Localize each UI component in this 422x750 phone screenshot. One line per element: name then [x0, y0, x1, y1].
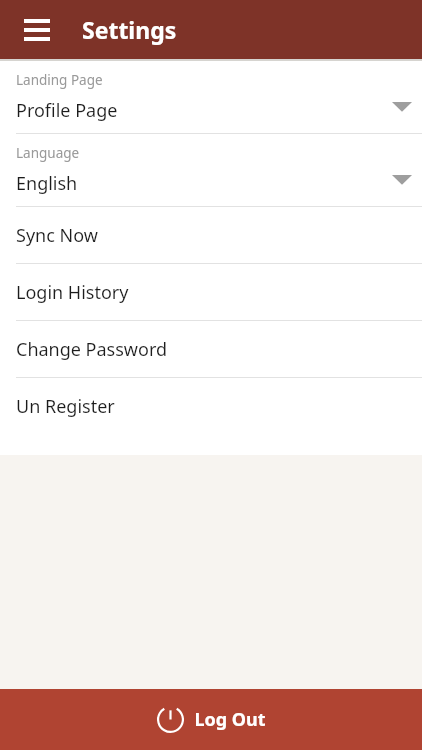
staticText: Language — [16, 144, 80, 162]
staticText: Landing Page — [16, 71, 103, 89]
staticText: Log Out — [194, 707, 266, 732]
button[interactable]: Un Register — [0, 378, 422, 434]
staticText: Un Register — [16, 394, 115, 419]
staticText: Login History — [16, 280, 129, 305]
button[interactable]: Landing Page — [0, 61, 422, 133]
button[interactable]: Login History — [0, 264, 422, 320]
button[interactable]: Log Out — [0, 689, 422, 750]
button[interactable]: Open navigation menu — [14, 7, 60, 53]
button[interactable]: Change Password — [0, 321, 422, 377]
staticText: Profile Page — [16, 98, 118, 123]
staticText: Settings — [82, 14, 177, 45]
staticText: Sync Now — [16, 223, 98, 248]
staticText: Change Password — [16, 337, 168, 362]
staticText: English — [16, 171, 78, 196]
button[interactable]: Sync Now — [0, 207, 422, 263]
button[interactable]: Language — [0, 134, 422, 206]
